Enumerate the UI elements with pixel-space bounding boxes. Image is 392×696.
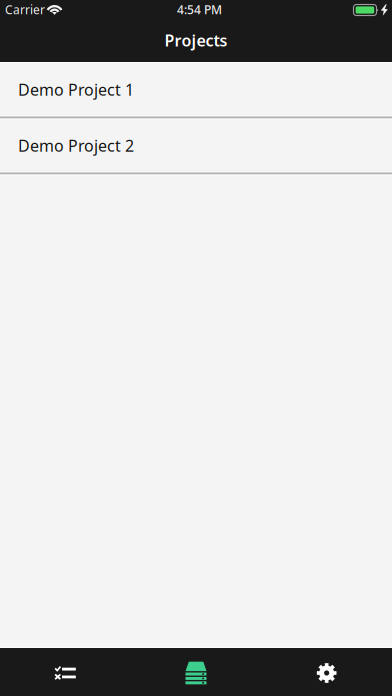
staticText: Demo Project 1: [18, 79, 134, 100]
button[interactable]: Projects: [131, 648, 261, 696]
staticText: Projects: [164, 30, 227, 51]
staticText: Carrier: [5, 1, 45, 17]
staticText: 4:54 PM: [177, 1, 222, 17]
button[interactable]: Tasks: [0, 648, 131, 696]
button[interactable]: Settings: [261, 648, 392, 696]
button[interactable]: Demo Project 2: [0, 119, 392, 175]
staticText: Demo Project 2: [18, 135, 134, 156]
button[interactable]: Demo Project 1: [0, 63, 392, 119]
